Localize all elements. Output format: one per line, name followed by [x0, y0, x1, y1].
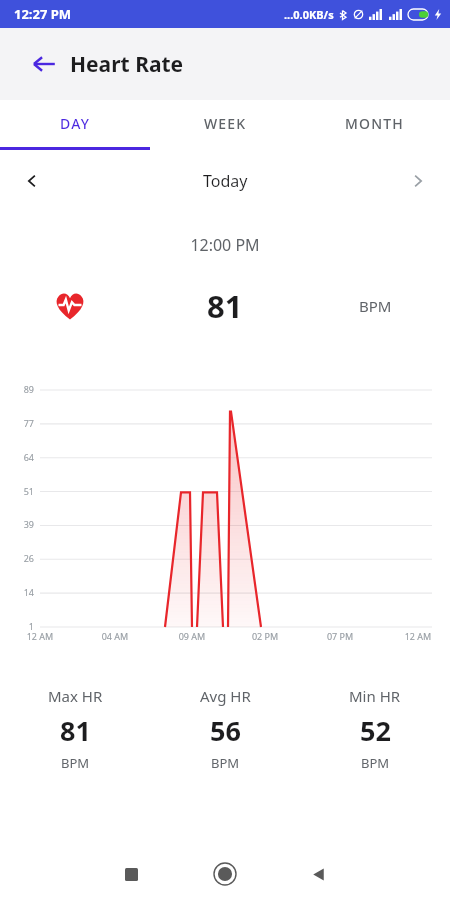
button[interactable]: Back [298, 854, 338, 894]
staticText: 12:27 PM [14, 5, 72, 23]
button[interactable]: Previous day [12, 161, 52, 201]
button[interactable]: DAY [0, 100, 150, 147]
staticText: 02 PM [245, 630, 285, 642]
staticText: MONTH [345, 114, 405, 133]
staticText: BPM [359, 296, 392, 316]
button[interactable]: Recents [111, 854, 151, 894]
staticText: 39 [4, 518, 34, 530]
staticText: 64 [4, 451, 34, 463]
staticText: WEEK [204, 114, 247, 133]
staticText: Heart Rate [70, 50, 184, 79]
button[interactable]: WEEK [150, 100, 300, 147]
staticText: 12 AM [20, 630, 60, 642]
staticText: 14 [4, 586, 34, 598]
staticText: 04 AM [95, 630, 135, 642]
staticText: 81 [207, 285, 243, 327]
staticText: 81 [60, 712, 91, 749]
staticText: 09 AM [172, 630, 212, 642]
staticText: 12:00 PM [0, 234, 450, 256]
staticText: 51 [4, 485, 34, 497]
staticText: Min HR [349, 686, 401, 706]
staticText: ...0.0KB/s [284, 7, 334, 22]
staticText: 26 [4, 552, 34, 564]
staticText: DAY [60, 114, 91, 133]
staticText: 1 [4, 620, 34, 632]
button[interactable]: MONTH [300, 100, 450, 147]
staticText: 12 AM [398, 630, 438, 642]
button[interactable]: Next day [398, 161, 438, 201]
staticText: 56 [210, 712, 241, 749]
staticText: BPM [211, 754, 240, 772]
staticText: 52 [360, 712, 391, 749]
button[interactable]: Min HR [300, 686, 450, 772]
button[interactable]: Home [205, 854, 245, 894]
staticText: 77 [4, 417, 34, 429]
button[interactable]: Avg HR [150, 686, 300, 772]
staticText: BPM [361, 754, 390, 772]
staticText: Avg HR [200, 686, 251, 706]
staticText: 07 PM [320, 630, 360, 642]
staticText: Max HR [48, 686, 103, 706]
button[interactable]: Back [22, 42, 66, 86]
staticText: Today [203, 170, 248, 192]
staticText: 89 [4, 383, 34, 395]
button[interactable]: Max HR [0, 686, 150, 772]
staticText: BPM [61, 754, 90, 772]
